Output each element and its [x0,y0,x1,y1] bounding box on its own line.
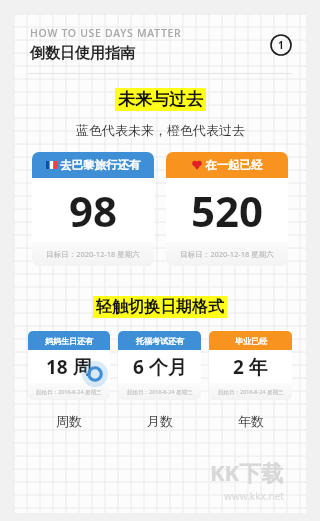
staticText: 目标日：2020-12-18 星期六 [180,249,274,259]
staticText: 年数 [238,413,264,429]
staticText: 98 [69,182,118,239]
staticText: 18 周 [46,354,92,380]
staticText: 在一起已经 [205,158,263,172]
staticText: KK下载 [210,457,284,487]
staticText: 去巴黎旅行还有 [60,158,141,172]
staticText: 毕业已经 [235,336,267,346]
staticText: 起始日：2016-8-24 星期三 [218,388,284,396]
staticText: 倒数日使用指南 [30,44,135,63]
staticText: 月数 [147,413,173,429]
button[interactable]: 去巴黎旅行还有 [32,152,154,266]
staticText: 周数 [56,413,82,429]
staticText: 目标日：2020-12-18 星期六 [46,249,140,259]
staticText: www.kkx.net [224,489,284,503]
staticText: 6 个月 [133,354,187,380]
staticText: 起始日：2016-8-24 星期三 [127,388,193,396]
staticText: 蓝色代表未来，橙色代表过去 [76,122,245,138]
button[interactable]: 托福考试还有 [118,331,201,400]
staticText: HOW TO USE DAYS MATTER [30,26,182,40]
button[interactable]: 毕业已经 [209,331,292,400]
staticText: 妈妈生日还有 [45,336,93,346]
staticText: 起始日：2016-8-24 星期三 [36,388,102,396]
staticText: 2 年 [233,354,268,380]
staticText: 未来与过去 [118,89,203,110]
button[interactable]: 在一起已经 [166,152,288,266]
staticText: 托福考试还有 [136,336,184,346]
button[interactable]: 妈妈生日还有 [28,331,110,400]
staticText: 520 [191,182,264,239]
staticText: 轻触切换日期格式 [96,297,224,317]
staticText: 1 [278,38,284,52]
button[interactable]: Step 1 [270,34,292,56]
